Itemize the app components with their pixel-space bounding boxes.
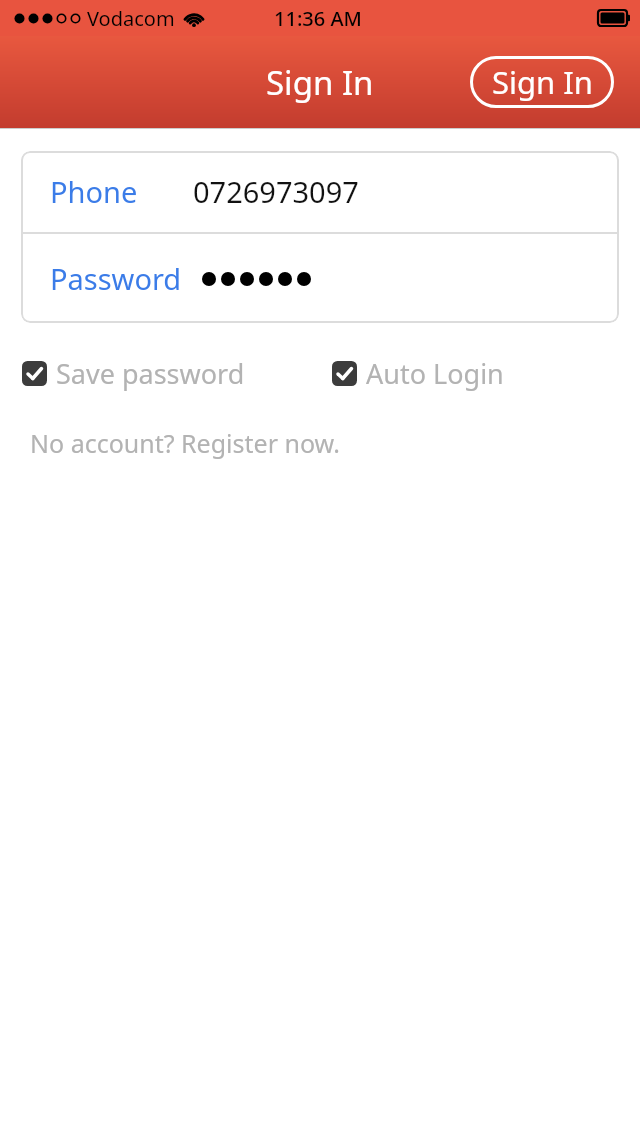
button[interactable]: Auto Login <box>332 351 504 396</box>
staticText: Sign In <box>492 61 593 103</box>
button[interactable]: Password <box>21 234 619 323</box>
staticText: Password <box>50 259 182 298</box>
staticText: 0726973097 <box>193 172 359 211</box>
staticText: 11:36 AM <box>274 5 362 32</box>
button[interactable]: Phone <box>21 151 619 232</box>
staticText: Auto Login <box>366 355 504 392</box>
button[interactable]: Save password <box>22 351 245 396</box>
button[interactable]: Sign In <box>470 56 614 108</box>
staticText: Sign In <box>266 60 374 105</box>
staticText: Save password <box>56 355 245 392</box>
staticText: Phone <box>50 172 138 211</box>
staticText: Vodacom <box>87 5 175 32</box>
button[interactable]: No account? Register now. <box>30 426 340 460</box>
